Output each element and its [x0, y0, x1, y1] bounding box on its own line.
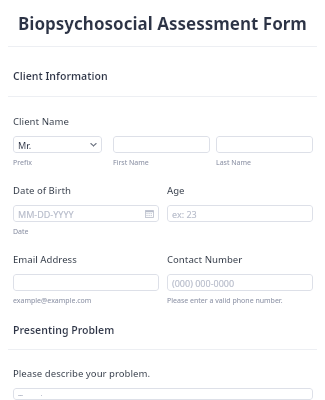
button[interactable]: Email Address	[13, 274, 159, 291]
button[interactable]: ex: 23	[167, 205, 313, 222]
staticText: Biopsychosocial Assessment Form	[18, 12, 307, 35]
staticText: (000) 000-0000	[172, 277, 235, 289]
staticText: Client Name	[13, 115, 69, 128]
staticText: Last Name	[216, 158, 252, 168]
staticText: MM-DD-YYYY	[18, 208, 74, 220]
button[interactable]: Type here...	[13, 388, 313, 400]
button[interactable]: First Name	[113, 136, 210, 153]
other: Pick date	[145, 209, 154, 218]
button[interactable]: (000) 000-0000	[167, 274, 313, 291]
staticText: example@example.com	[13, 296, 92, 306]
staticText: Prefix	[13, 158, 32, 168]
staticText: Presenting Problem	[13, 323, 115, 337]
staticText: Please describe your problem.	[13, 367, 151, 380]
button[interactable]: Mr.	[13, 136, 102, 153]
staticText: Date of Birth	[13, 184, 71, 197]
staticText: Mr.	[18, 139, 90, 151]
staticText: Type here...	[18, 392, 67, 396]
staticText: Age	[167, 184, 185, 197]
staticText: Client Information	[13, 69, 108, 83]
staticText: Please enter a valid phone number.	[167, 296, 283, 306]
staticText: First Name	[113, 158, 149, 168]
button[interactable]: MM-DD-YYYY	[13, 205, 159, 222]
other: Open prefix dropdown	[90, 141, 97, 148]
button[interactable]: Last Name	[216, 136, 313, 153]
staticText: Email Address	[13, 253, 77, 266]
staticText: Contact Number	[167, 253, 243, 266]
staticText: Date	[13, 227, 29, 237]
staticText: ex: 23	[172, 208, 197, 220]
